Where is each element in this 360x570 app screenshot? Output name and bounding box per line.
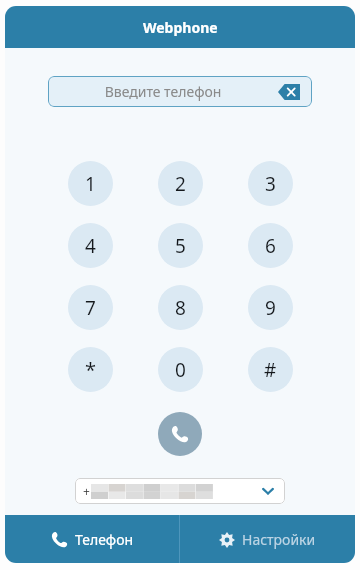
staticText: * [85, 356, 97, 383]
button[interactable]: Настройки [180, 515, 355, 563]
button[interactable]: 2 [158, 161, 203, 206]
button[interactable]: Backspace [278, 84, 300, 100]
button[interactable]: Введите телефон [48, 76, 312, 107]
staticText: 1 [85, 171, 96, 197]
staticText: + [83, 483, 90, 499]
staticText: 3 [265, 171, 276, 197]
staticText: Введите телефон [48, 82, 278, 101]
button[interactable]: 1 [68, 161, 113, 206]
button[interactable]: 9 [248, 285, 293, 330]
button[interactable]: Телефон [5, 515, 179, 563]
button[interactable]: 8 [158, 285, 203, 330]
button[interactable]: 7 [68, 285, 113, 330]
button[interactable]: 6 [248, 223, 293, 268]
button[interactable]: 4 [68, 223, 113, 268]
button[interactable]: * [68, 347, 113, 392]
staticText: 0 [175, 357, 186, 383]
button[interactable]: 3 [248, 161, 293, 206]
button[interactable]: # [248, 347, 293, 392]
staticText: 2 [175, 171, 186, 197]
staticText: Настройки [242, 530, 316, 549]
staticText: 9 [265, 295, 276, 321]
other: Expand [261, 484, 275, 498]
button[interactable]: 0 [158, 347, 203, 392]
staticText: 7 [85, 295, 96, 321]
staticText: # [264, 357, 277, 383]
button[interactable]: Call [158, 412, 202, 456]
staticText: 4 [85, 233, 96, 259]
staticText: 5 [175, 233, 186, 259]
button[interactable]: 5 [158, 223, 203, 268]
staticText: Webphone [143, 18, 218, 37]
button[interactable]: + [75, 478, 285, 504]
staticText: Телефон [75, 530, 134, 549]
staticText: 8 [175, 295, 186, 321]
staticText: 6 [265, 233, 276, 259]
